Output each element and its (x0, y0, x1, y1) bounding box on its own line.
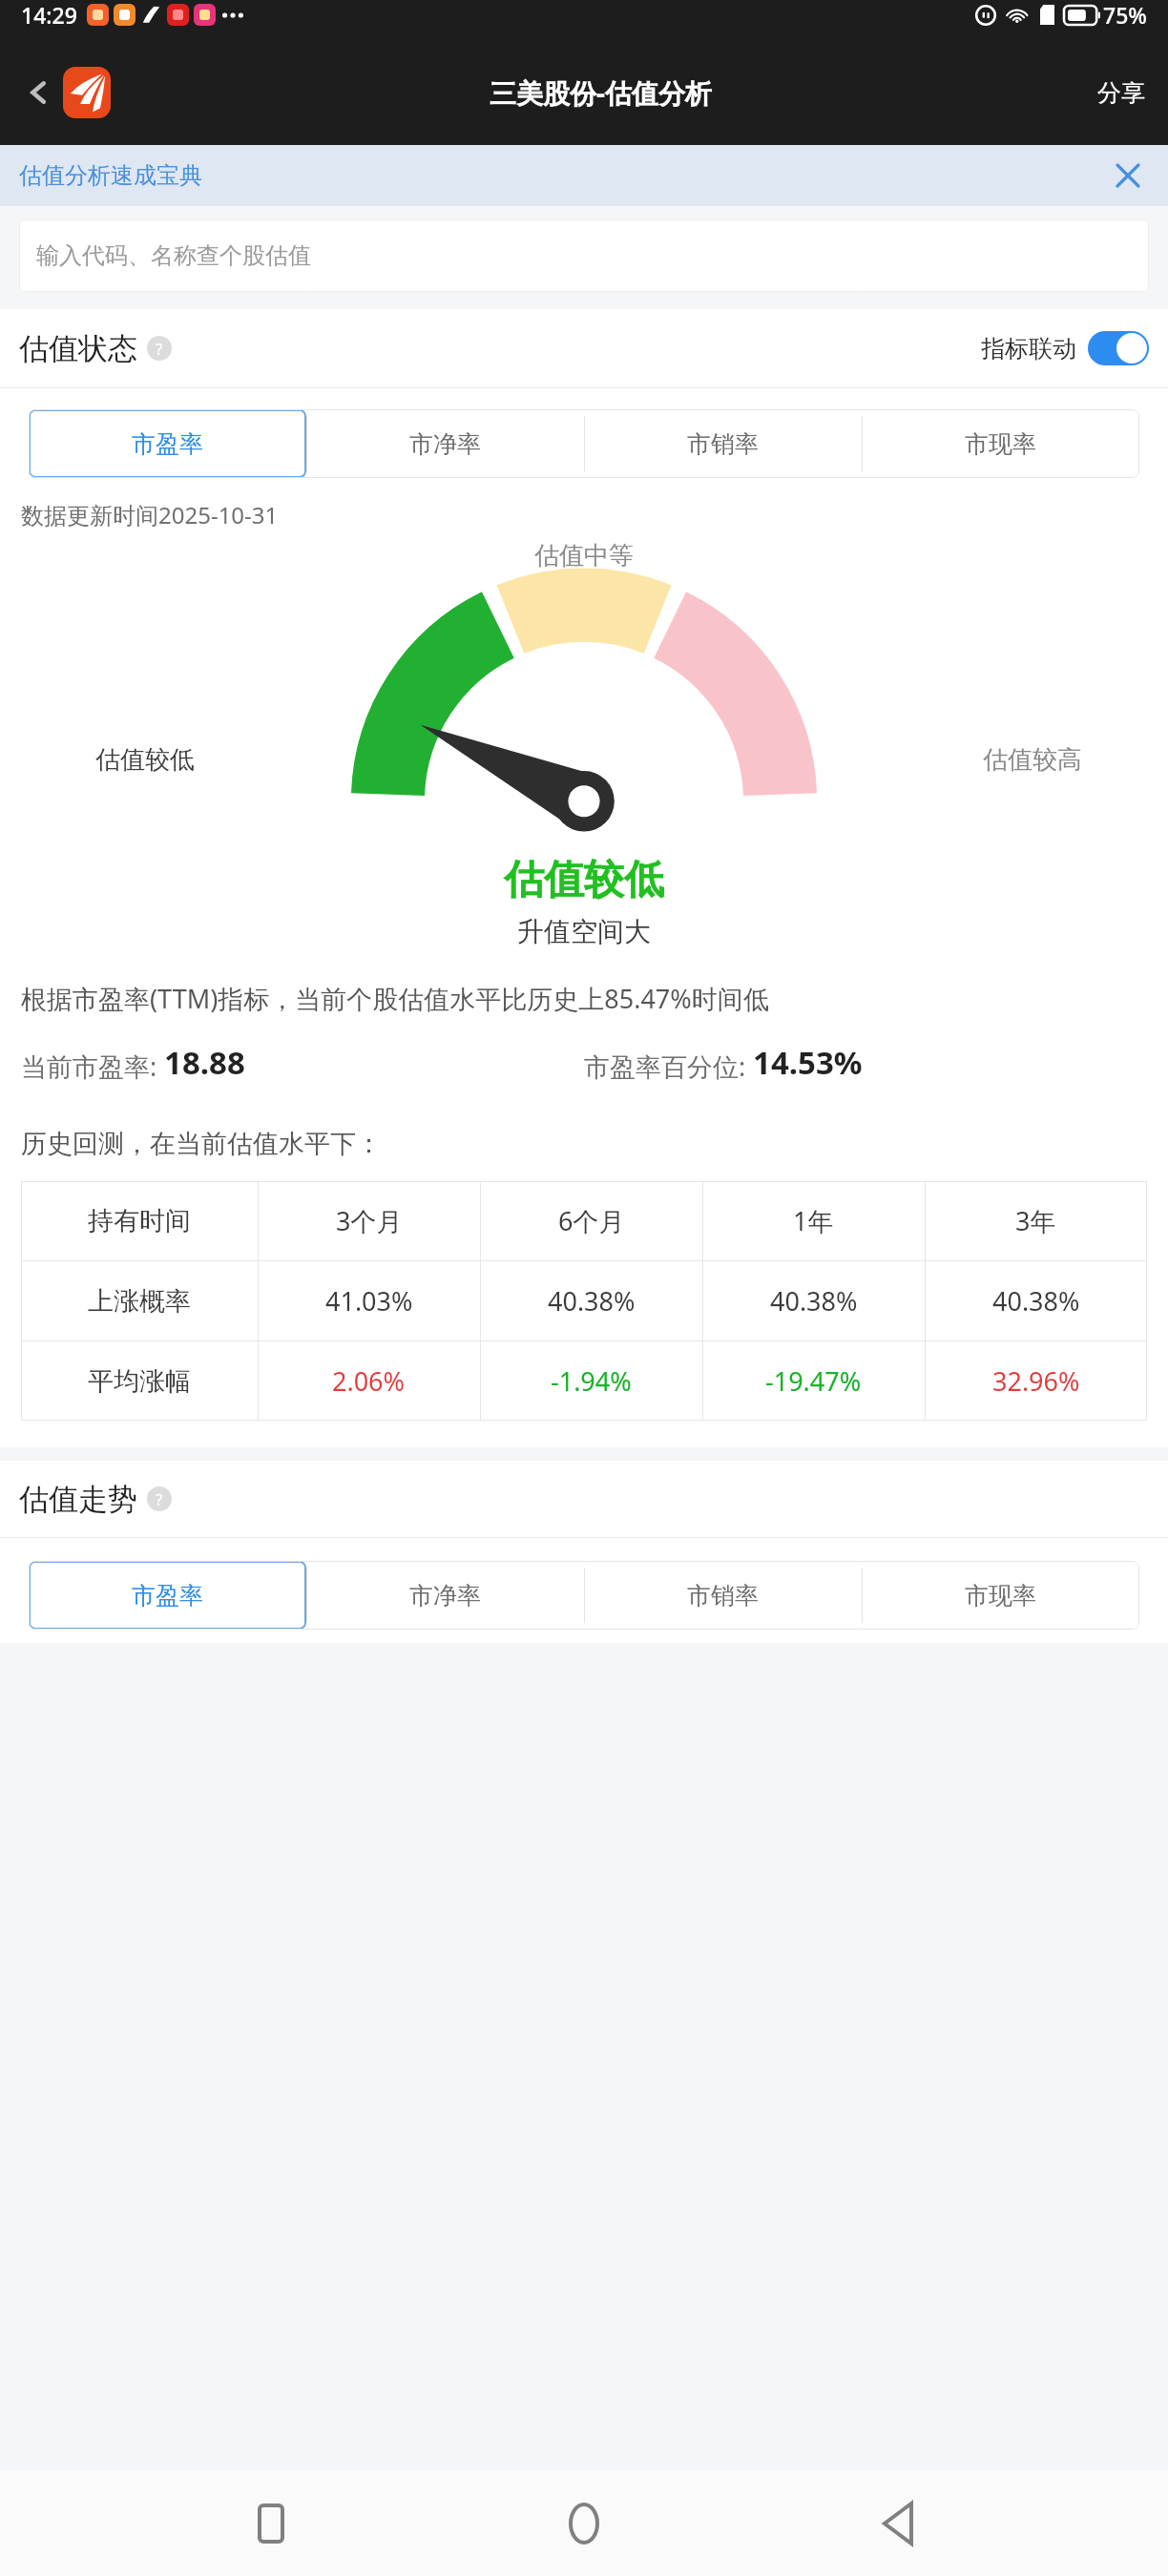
staticText: 市销率 (687, 429, 759, 459)
staticText: 数据更新时间2025-10-31 (21, 499, 279, 530)
staticText: 市净率 (409, 1581, 481, 1610)
staticText: 估值中等 (534, 540, 634, 571)
staticText: 估值走势 (19, 1481, 137, 1518)
button[interactable]: 市现率 (862, 1561, 1139, 1630)
staticText: 平均涨幅 (88, 1365, 191, 1398)
staticText: ? (156, 338, 163, 360)
staticText: 市盈率 (132, 1581, 203, 1610)
staticText: 3年 (1015, 1203, 1056, 1238)
staticText: 估值较高 (983, 744, 1082, 776)
staticText: 输入代码、名称查个股估值 (36, 241, 311, 270)
staticText: 75% (1103, 0, 1147, 30)
staticText: 估值状态 (19, 330, 137, 367)
staticText: 估值分析速成宝典 (19, 161, 202, 190)
staticText: 40.38% (770, 1283, 858, 1319)
staticText: -1.94% (551, 1363, 632, 1399)
staticText: 升值空间大 (0, 915, 1168, 948)
button[interactable]: Back (17, 71, 61, 114)
staticText: 2.06% (332, 1363, 406, 1399)
staticText: 32.96% (992, 1363, 1080, 1399)
staticText: 1年 (793, 1203, 834, 1238)
button[interactable]: Back (855, 2481, 941, 2566)
staticText: 40.38% (992, 1283, 1080, 1319)
button[interactable]: Home (541, 2481, 627, 2566)
staticText: 当前市盈率: (21, 1049, 164, 1084)
button[interactable]: Help (147, 336, 172, 361)
staticText: 41.03% (325, 1283, 413, 1319)
staticText: ? (156, 1488, 163, 1510)
button[interactable]: 输入代码、名称查个股估值 (19, 219, 1149, 292)
button[interactable]: Help (147, 1486, 172, 1511)
staticText: 市盈率 (132, 429, 203, 459)
staticText: 持有时间 (88, 1205, 191, 1237)
staticText: 估值较低 (0, 855, 1168, 905)
staticText: 市现率 (965, 1581, 1036, 1610)
staticText: 市盈率百分位: (584, 1049, 753, 1084)
button[interactable]: 分享 (1092, 69, 1151, 117)
button[interactable]: Toggle indicator link (1088, 331, 1149, 365)
staticText: 上涨概率 (88, 1285, 191, 1318)
staticText: 40.38% (548, 1283, 636, 1319)
staticText: 14.53% (753, 1041, 863, 1084)
staticText: 市现率 (965, 429, 1036, 459)
button[interactable]: App logo (63, 67, 111, 118)
staticText: 三美股份-估值分析 (490, 74, 712, 111)
button[interactable]: Recents (228, 2481, 314, 2566)
staticText: 分享 (1097, 78, 1145, 108)
button[interactable]: 市盈率 (29, 1561, 306, 1630)
staticText: 市净率 (409, 429, 481, 459)
staticText: 根据市盈率(TTM)指标，当前个股估值水平比历史上85.47%时间低 (21, 981, 1147, 1016)
button[interactable]: 市净率 (306, 1561, 584, 1630)
staticText: 历史回测，在当前估值水平下： (21, 1128, 382, 1160)
staticText: 估值较低 (95, 744, 195, 776)
button[interactable]: Close (1107, 155, 1149, 197)
staticText: 14:29 (21, 0, 77, 30)
staticText: 18.88 (164, 1041, 245, 1084)
button[interactable]: 市净率 (306, 409, 584, 478)
button[interactable]: 市现率 (862, 409, 1139, 478)
staticText: 6个月 (558, 1203, 625, 1238)
button[interactable]: 市盈率 (29, 409, 306, 478)
button[interactable]: 市销率 (584, 409, 862, 478)
button[interactable]: 估值分析速成宝典 (19, 161, 202, 190)
staticText: -19.47% (765, 1363, 862, 1399)
staticText: 3个月 (336, 1203, 403, 1238)
staticText: 市销率 (687, 1581, 759, 1610)
button[interactable]: 市销率 (584, 1561, 862, 1630)
staticText: 指标联动 (981, 334, 1076, 364)
